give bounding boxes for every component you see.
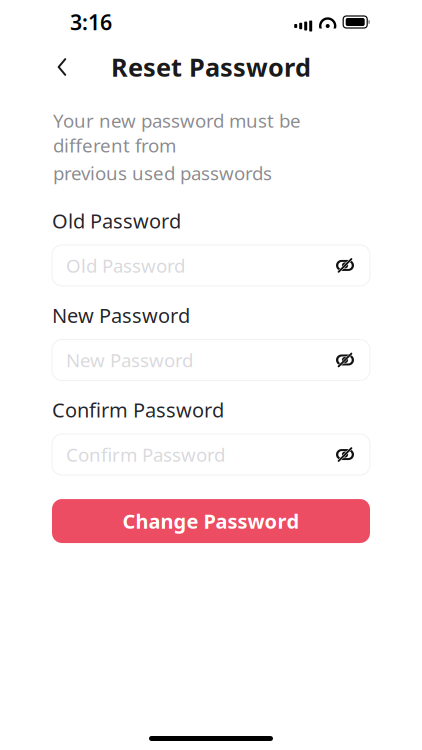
staticText: Confirm Password <box>52 396 224 423</box>
staticText: previous used passwords <box>53 161 272 185</box>
button[interactable]: New Password <box>52 339 370 380</box>
button[interactable]: Confirm Password <box>52 434 370 475</box>
staticText: Change Password <box>122 508 299 534</box>
staticText: Old Password <box>66 253 185 278</box>
staticText: Your new password must be different from <box>53 108 301 158</box>
staticText: New Password <box>66 348 193 372</box>
staticText: Confirm Password <box>66 442 225 467</box>
button[interactable]: Change Password <box>52 499 370 543</box>
button[interactable]: Back <box>40 45 84 89</box>
button[interactable]: Old Password <box>52 245 370 286</box>
staticText: New Password <box>52 302 190 328</box>
staticText: Old Password <box>52 207 181 234</box>
staticText: 3:16 <box>70 8 112 36</box>
staticText: Reset Password <box>111 50 311 84</box>
